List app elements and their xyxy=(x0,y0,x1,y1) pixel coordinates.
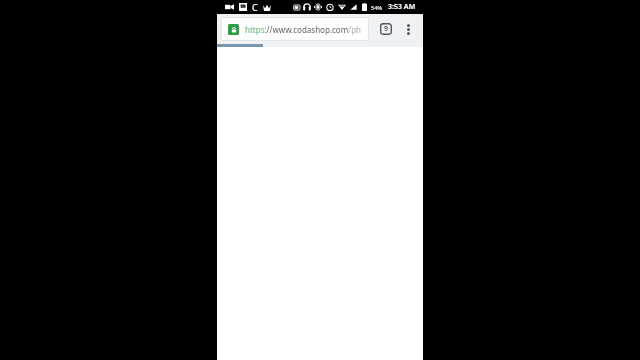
staticText: 9 xyxy=(384,24,389,34)
button[interactable]: Tabs xyxy=(371,14,400,44)
button[interactable]: More options xyxy=(398,14,418,44)
staticText: C xyxy=(252,1,258,13)
staticText: 3:53 AM xyxy=(388,2,416,12)
button[interactable]: https://www.codashop.com/ph xyxy=(221,17,369,41)
staticText: https://www.codashop.com/ph xyxy=(245,24,362,35)
staticText: 54% xyxy=(371,4,383,11)
